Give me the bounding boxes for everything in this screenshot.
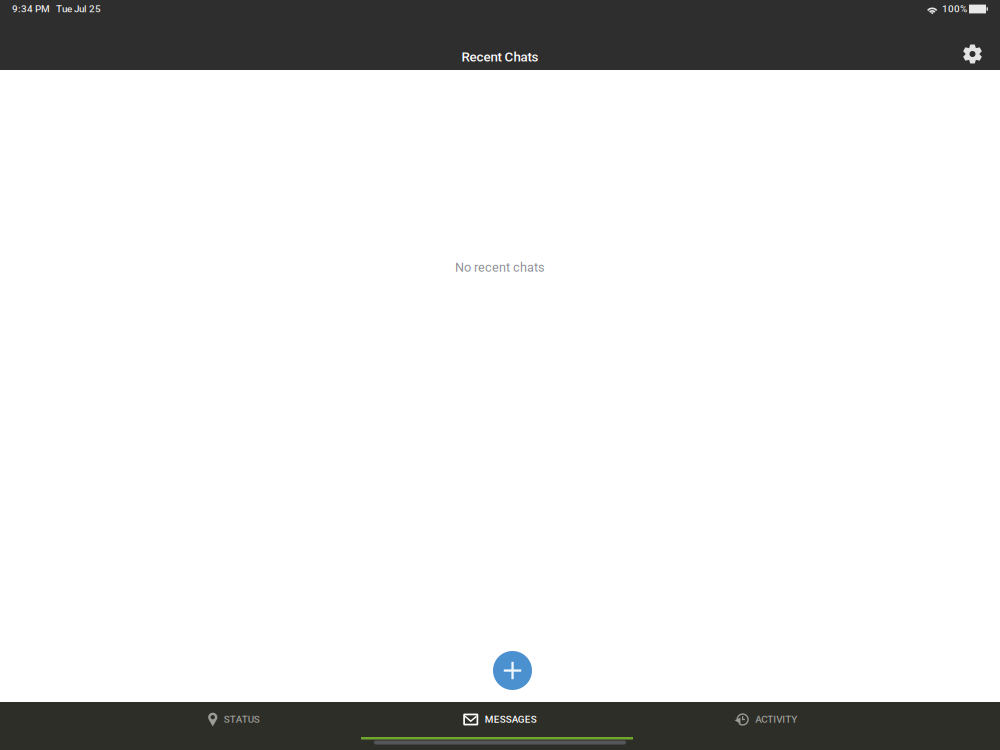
button[interactable]: Settings xyxy=(952,37,992,77)
button[interactable]: ACTIVITY xyxy=(633,702,899,739)
staticText: MESSAGES xyxy=(485,714,537,725)
staticText: 100% xyxy=(942,3,967,15)
staticText: 9:34 PM xyxy=(12,3,50,15)
staticText: Recent Chats xyxy=(461,49,538,65)
staticText: No recent chats xyxy=(455,260,545,275)
staticText: STATUS xyxy=(224,714,260,725)
button[interactable]: MESSAGES xyxy=(367,702,633,739)
staticText: ACTIVITY xyxy=(755,714,797,725)
button[interactable]: STATUS xyxy=(101,702,367,739)
staticText: Tue Jul 25 xyxy=(56,3,101,15)
button[interactable]: New chat xyxy=(493,651,532,690)
